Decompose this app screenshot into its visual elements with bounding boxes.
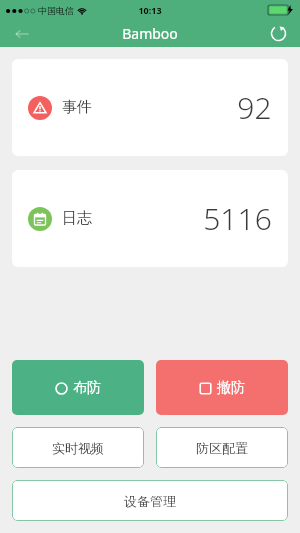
staticText: 撤防 [217,379,245,397]
button[interactable]: 撤防 [156,360,288,415]
button[interactable]: 实时视频 [12,427,144,468]
staticText: 防区配置 [196,440,248,456]
staticText: 92 [237,87,272,128]
staticText: 10:13 [138,4,162,16]
button[interactable]: 防区配置 [156,427,288,468]
button[interactable]: Back [0,20,44,47]
button[interactable]: 设备管理 [12,480,288,521]
button[interactable]: Refresh [256,20,300,47]
staticText: 布防 [73,379,101,397]
staticText: 设备管理 [124,493,176,509]
button[interactable]: 日志 [12,170,288,267]
button[interactable]: 布防 [12,360,144,415]
staticText: Bamboo [122,24,178,43]
button[interactable]: 事件 [12,59,288,156]
staticText: 实时视频 [52,440,104,456]
staticText: 中国电信 [38,5,74,16]
staticText: 5116 [203,198,272,239]
staticText: 事件 [62,98,92,117]
staticText: 日志 [62,209,92,228]
